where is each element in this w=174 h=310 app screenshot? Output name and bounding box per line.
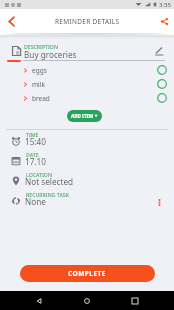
staticText: 17.10 bbox=[25, 156, 46, 167]
staticText: Buy groceries bbox=[24, 49, 77, 60]
staticText: 15:40 bbox=[25, 136, 46, 147]
button[interactable]: Share bbox=[154, 9, 174, 33]
staticText: 3:35 bbox=[159, 1, 171, 9]
staticText: Not selected bbox=[25, 176, 74, 187]
staticText: RECURRING TASK bbox=[26, 191, 69, 198]
staticText: bread bbox=[32, 94, 50, 103]
button[interactable]: Back bbox=[30, 292, 48, 310]
staticText: DATE bbox=[26, 151, 39, 158]
button[interactable]: ADD ITEM + bbox=[67, 110, 102, 122]
button[interactable]: More options bbox=[152, 195, 166, 209]
button[interactable]: COMPLETE bbox=[20, 265, 155, 282]
staticText: LOCATION bbox=[26, 171, 52, 178]
button[interactable]: milk bbox=[0, 77, 174, 91]
staticText: milk bbox=[32, 80, 45, 89]
staticText: None bbox=[25, 196, 46, 207]
button[interactable]: Back bbox=[0, 9, 22, 33]
button[interactable]: LOCATION bbox=[0, 172, 174, 192]
staticText: ADD ITEM + bbox=[71, 113, 98, 119]
button[interactable]: Home bbox=[78, 292, 96, 310]
button[interactable]: RECURRING TASK bbox=[0, 192, 174, 212]
button[interactable]: TIME bbox=[0, 132, 174, 152]
staticText: TIME bbox=[26, 131, 39, 138]
button[interactable]: eggs bbox=[0, 63, 174, 77]
button[interactable]: DATE bbox=[0, 152, 174, 172]
staticText: COMPLETE bbox=[68, 269, 107, 278]
staticText: eggs bbox=[32, 66, 47, 75]
staticText: REMINDER DETAILS bbox=[55, 17, 120, 26]
button[interactable]: bread bbox=[0, 91, 174, 105]
button[interactable]: Edit description bbox=[152, 44, 166, 58]
staticText: DESCRIPTION bbox=[24, 43, 58, 50]
button[interactable]: Recent apps bbox=[126, 292, 144, 310]
